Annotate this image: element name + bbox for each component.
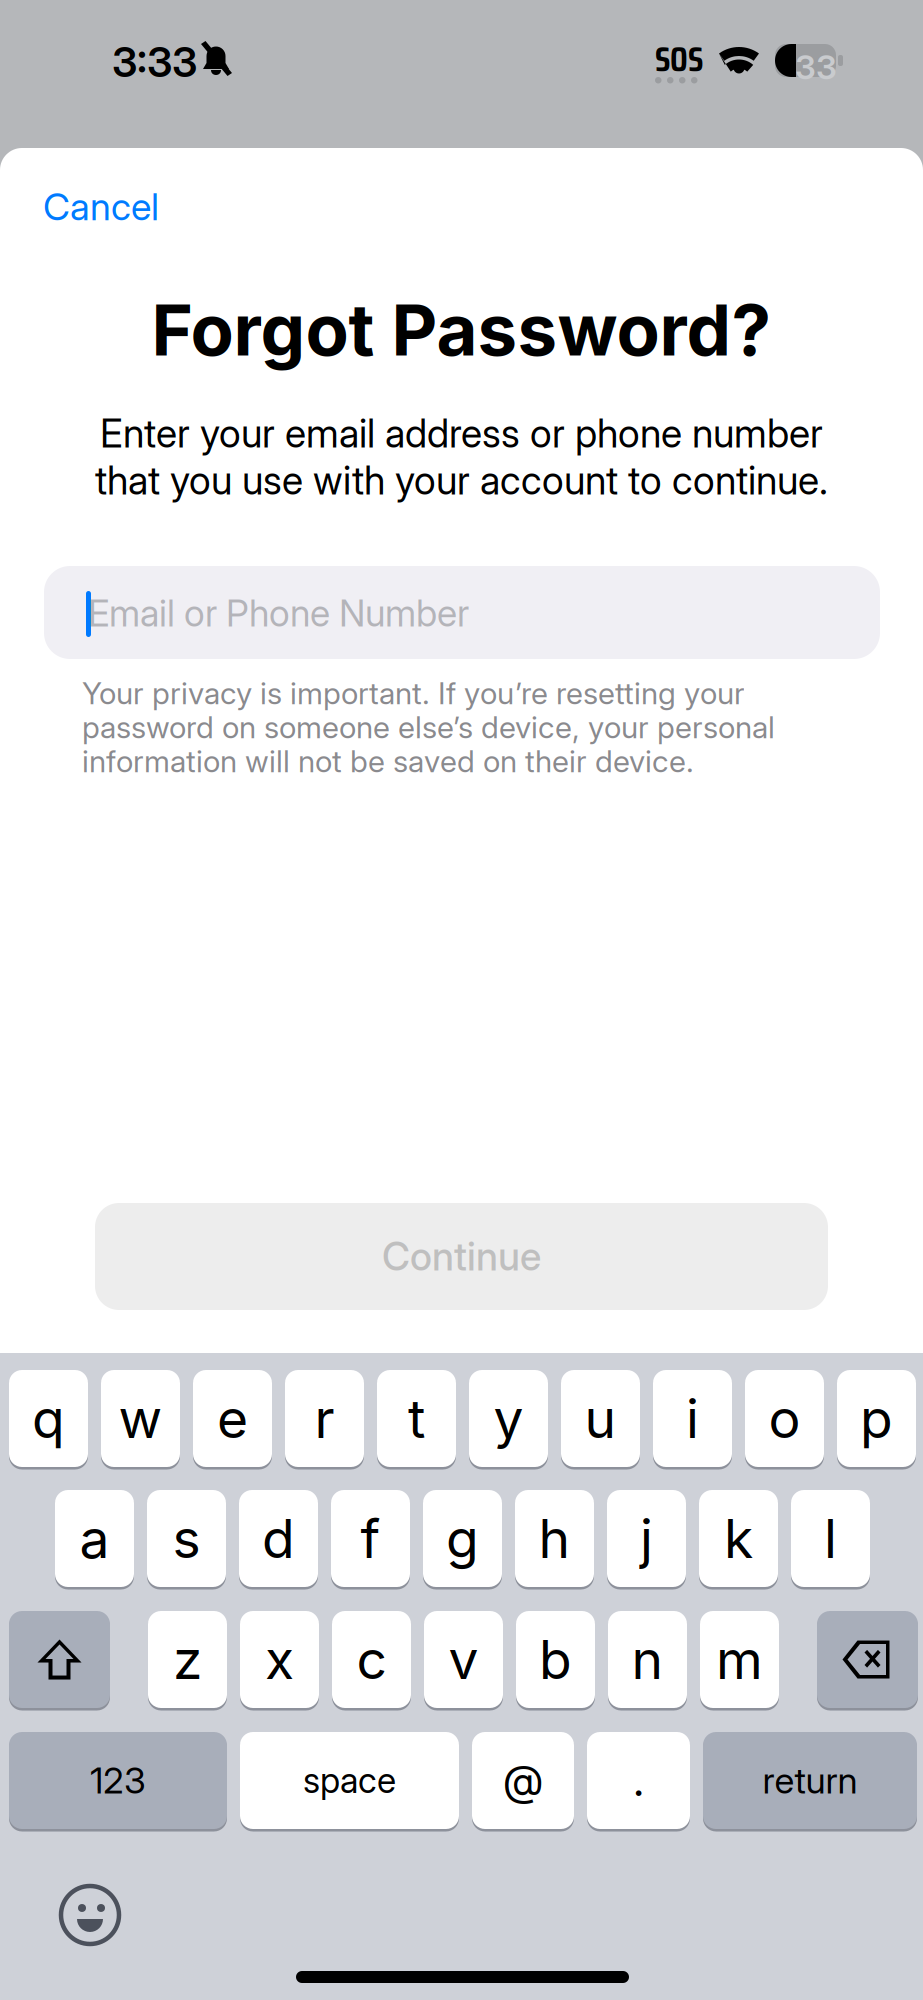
button[interactable]: d [239,1490,318,1590]
staticText: l [824,1506,837,1571]
staticText: z [173,1627,202,1692]
staticText: j [640,1506,653,1571]
button[interactable]: q [9,1370,88,1470]
button[interactable]: b [516,1611,595,1711]
staticText: SOS [655,32,703,87]
staticText: x [265,1627,294,1692]
staticText: c [356,1627,386,1692]
button[interactable]: @ [472,1732,574,1832]
button[interactable]: Numbers [9,1732,227,1832]
button[interactable]: t [377,1370,456,1470]
button[interactable]: m [700,1611,779,1711]
staticText: @ [502,1755,543,1806]
button[interactable]: Return [703,1732,917,1832]
staticText: y [493,1386,523,1451]
staticText: h [538,1506,570,1571]
staticText: . [632,1755,644,1806]
staticText: Your privacy is important. If you’re res… [82,675,745,711]
button[interactable]: Shift [9,1611,110,1711]
button[interactable]: v [424,1611,503,1711]
staticText: w [118,1386,162,1451]
staticText: Email or Phone Number [88,591,469,635]
button[interactable]: o [745,1370,824,1470]
button[interactable]: a [55,1490,134,1590]
staticText: Forgot Password? [151,287,771,372]
button[interactable]: h [515,1490,594,1590]
button[interactable]: space [240,1732,459,1832]
staticText: return [762,1759,857,1802]
staticText: password on someone else’s device, your … [82,709,775,745]
staticText: t [408,1386,425,1451]
button[interactable]: n [608,1611,687,1711]
staticText: v [448,1627,478,1692]
staticText: e [217,1386,248,1451]
staticText: r [314,1386,334,1451]
staticText: a [79,1506,109,1571]
staticText: s [172,1506,200,1571]
button[interactable]: u [561,1370,640,1470]
staticText: Enter your email address or phone number [100,410,823,457]
staticText: Continue [382,1233,541,1280]
staticText: Cancel [43,184,159,229]
staticText: i [686,1386,699,1451]
staticText: n [631,1627,663,1692]
staticText: b [539,1627,572,1692]
staticText: u [584,1386,616,1451]
button[interactable]: x [240,1611,319,1711]
staticText: information will not be saved on their d… [82,743,694,779]
button[interactable]: Continue [95,1203,828,1310]
button[interactable]: j [607,1490,686,1590]
staticText: 33 [795,47,837,87]
staticText: p [860,1386,893,1451]
staticText: q [32,1386,65,1451]
staticText: o [768,1386,800,1451]
button[interactable]: . [587,1732,690,1832]
button[interactable]: f [331,1490,410,1590]
button[interactable]: g [423,1490,502,1590]
staticText: g [446,1506,479,1571]
button[interactable]: Emoji [61,1886,123,1948]
button[interactable]: Delete [817,1611,918,1711]
button[interactable]: z [148,1611,227,1711]
staticText: space [303,1759,396,1801]
staticText: 3:33 [112,37,197,87]
button[interactable]: e [193,1370,272,1470]
button[interactable]: w [101,1370,180,1470]
button[interactable]: p [837,1370,916,1470]
staticText: k [724,1506,753,1571]
staticText: f [360,1506,380,1571]
button[interactable]: k [699,1490,778,1590]
button[interactable]: s [147,1490,226,1590]
button[interactable]: y [469,1370,548,1470]
button[interactable]: l [791,1490,870,1590]
staticText: d [262,1506,295,1571]
staticText: that you use with your account to contin… [95,457,828,504]
button[interactable]: Cancel [29,168,173,245]
button[interactable]: c [332,1611,411,1711]
staticText: m [716,1627,763,1692]
button[interactable]: i [653,1370,732,1470]
staticText: 123 [90,1759,146,1802]
button[interactable]: r [285,1370,364,1470]
